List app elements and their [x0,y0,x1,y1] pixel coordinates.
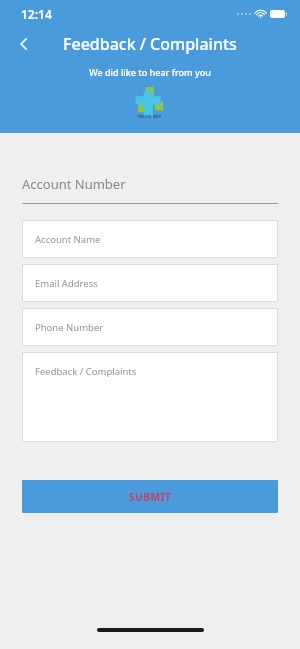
staticText: Email Address [35,277,98,290]
staticText: 12:14 [21,6,52,22]
button[interactable]: Account Number [22,175,278,193]
staticText: Feedback / Complaints [35,365,137,378]
staticText: PERSONAL TRUST [138,115,162,119]
button[interactable]: Back [8,28,40,60]
staticText: SUBMIT [129,490,172,504]
staticText: We did like to hear from you [0,66,300,78]
button[interactable]: Account Name [22,220,278,258]
staticText: Phone Number [35,321,104,334]
button[interactable]: Feedback / Complaints [22,352,278,442]
staticText: Account Name [35,233,101,246]
button[interactable]: Email Address [22,264,278,302]
button[interactable]: SUBMIT [22,480,278,513]
button[interactable]: Phone Number [22,308,278,346]
staticText: Feedback / Complaints [63,33,237,55]
